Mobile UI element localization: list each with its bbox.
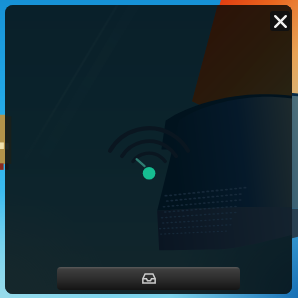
button[interactable]: Close: [270, 11, 290, 31]
button[interactable]: Inbox: [57, 267, 240, 290]
